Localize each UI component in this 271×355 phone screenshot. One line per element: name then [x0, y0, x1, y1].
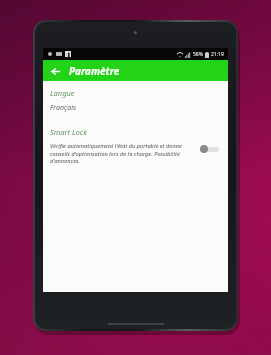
staticText: Langue	[50, 88, 75, 98]
button[interactable]: Français	[50, 102, 222, 114]
staticText: Paramètre	[69, 64, 120, 78]
button[interactable]: Back	[48, 64, 62, 78]
button[interactable]: Vérifie automatiquement l'état du portab…	[50, 142, 222, 164]
staticText: 21:19	[211, 51, 224, 58]
button[interactable]: Smart Lock toggle	[200, 144, 220, 154]
staticText: Vérifie automatiquement l'état du portab…	[50, 142, 194, 164]
staticText: Français	[50, 103, 76, 113]
staticText: Smart Lock	[50, 127, 87, 137]
staticText: 58%	[193, 51, 203, 58]
